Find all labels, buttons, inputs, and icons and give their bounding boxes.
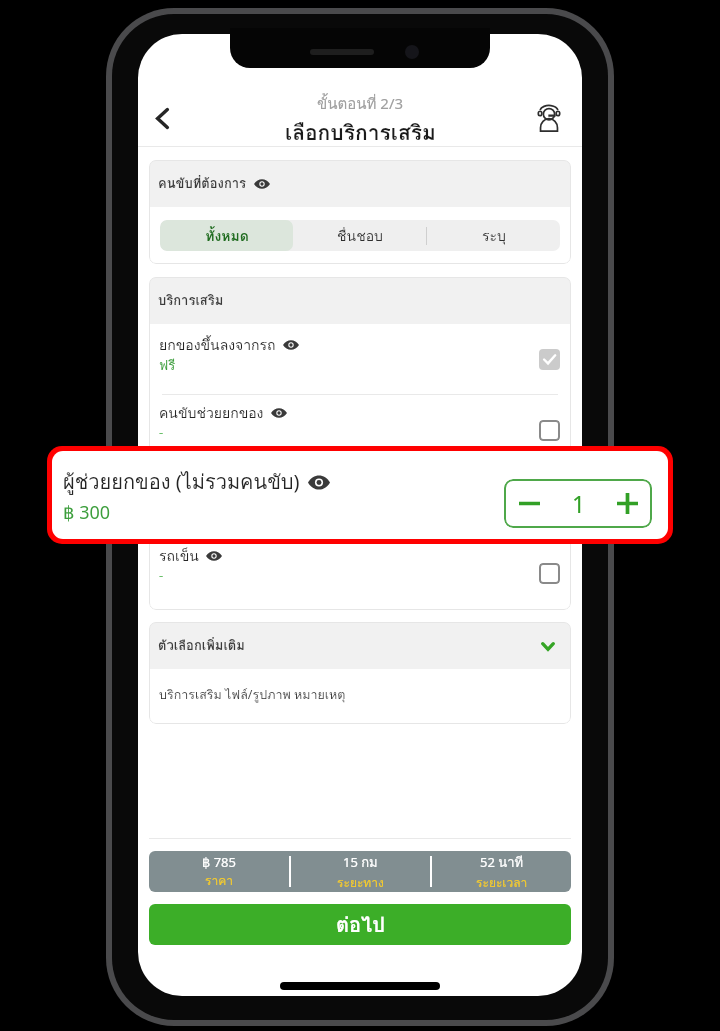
button[interactable]: Toggle option (539, 349, 560, 370)
staticText: ชื่นชอบ (337, 225, 383, 247)
staticText: เลือกบริการเสริม (285, 116, 436, 149)
staticText: - (159, 423, 164, 441)
button[interactable]: ต่อไป (149, 904, 571, 945)
staticText: คนขับที่ต้องการ (158, 173, 247, 194)
staticText: 52 นาที (480, 852, 524, 873)
staticText: 1 (572, 488, 586, 519)
staticText: - (159, 566, 164, 584)
button[interactable]: Customer support (528, 96, 570, 138)
button[interactable]: ยกของขึ้นลงจากรถ (149, 324, 571, 394)
staticText: ระบุ (482, 225, 506, 247)
staticText: ผู้ช่วยยกของ (ไม่รวมคนขับ) (63, 466, 300, 498)
button[interactable]: ระบุ (427, 220, 560, 251)
staticText: ฿ 785 (202, 853, 236, 871)
staticText: รถเข็น (159, 545, 199, 567)
button[interactable]: Toggle option (539, 563, 560, 584)
button[interactable]: Decrease quantity (504, 479, 554, 528)
staticText: 15 กม (343, 852, 378, 873)
staticText: ระยะทาง (337, 873, 384, 892)
staticText: ราคา (205, 871, 233, 890)
staticText: ระยะเวลา (476, 873, 528, 892)
staticText: ขั้นตอนที่ 2/3 (317, 92, 404, 116)
button[interactable]: รถเข็น (149, 537, 571, 610)
button[interactable]: Back (141, 97, 183, 139)
button[interactable]: คนขับช่วยยกของ (149, 395, 571, 465)
button[interactable]: Toggle option (539, 420, 560, 441)
staticText: บริการเสริม ไฟล์/รูปภาพ หมายเหตุ (159, 685, 346, 705)
button[interactable]: Increase quantity (603, 479, 652, 528)
staticText: ฿ 300 (63, 500, 111, 525)
staticText: คนขับช่วยยกของ (159, 402, 264, 424)
button[interactable]: ชื่นชอบ (293, 220, 426, 251)
button[interactable]: Expand (534, 632, 562, 660)
staticText: ทั้งหมด (205, 225, 249, 247)
staticText: ตัวเลือกเพิ่มเติม (158, 635, 245, 656)
staticText: ต่อไป (336, 909, 385, 941)
staticText: ยกของขึ้นลงจากรถ (159, 334, 276, 356)
button[interactable]: ทั้งหมด (160, 220, 293, 251)
staticText: บริการเสริม (158, 290, 224, 311)
button[interactable]: ผู้ช่วยยกของ (ไม่รวมคนขับ) (63, 451, 652, 539)
staticText: ฟรี (159, 355, 176, 376)
